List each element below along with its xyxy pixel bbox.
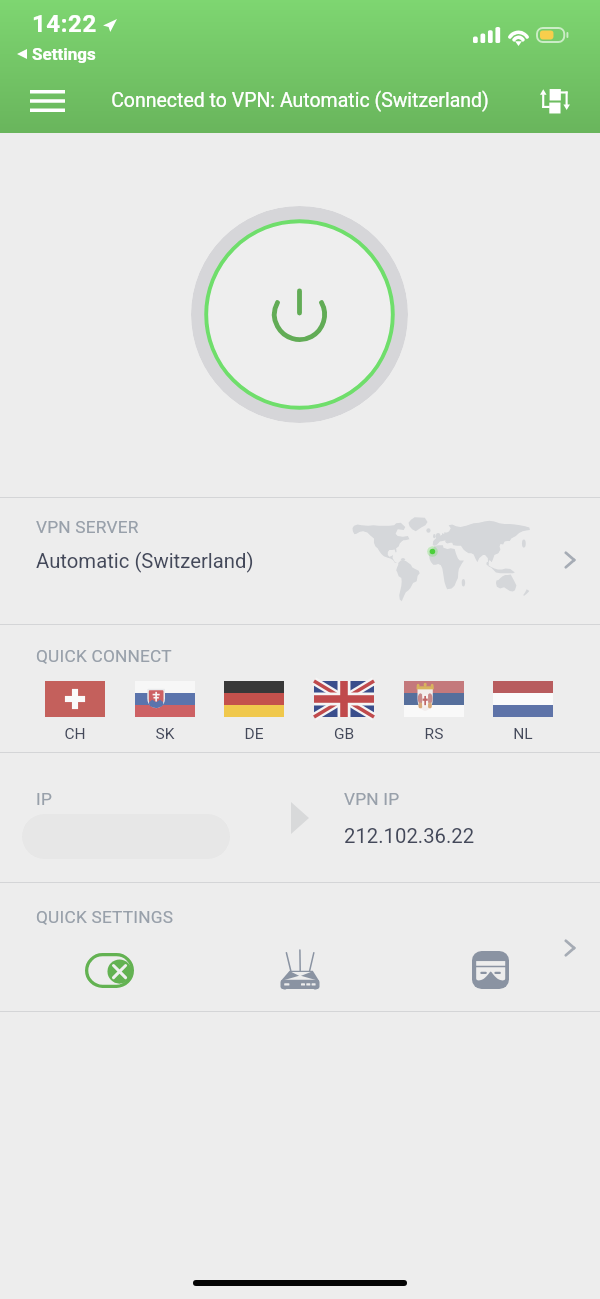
button[interactable]: Kill switch xyxy=(70,942,148,998)
staticText: QUICK CONNECT xyxy=(36,646,172,666)
staticText: VPN SERVER xyxy=(36,517,139,537)
button[interactable]: Power, connected xyxy=(191,206,408,423)
button[interactable]: Switch server xyxy=(527,73,583,129)
staticText: NL xyxy=(485,725,561,743)
button[interactable]: RS xyxy=(396,673,472,745)
staticText: VPN IP xyxy=(344,789,400,809)
staticText: Settings xyxy=(32,44,96,64)
button[interactable]: SK xyxy=(127,673,203,745)
staticText: 14:22 xyxy=(32,10,97,38)
staticText: DE xyxy=(216,725,292,743)
button[interactable]: GB xyxy=(306,673,382,745)
staticText: RS xyxy=(396,725,472,743)
button[interactable]: VPN SERVER xyxy=(0,498,600,624)
staticText: SK xyxy=(127,725,203,743)
staticText: Connected to VPN: Automatic (Switzerland… xyxy=(0,89,600,112)
button[interactable]: DE xyxy=(216,673,292,745)
button[interactable]: More settings xyxy=(550,928,590,968)
button[interactable]: NoSpy servers xyxy=(451,942,529,998)
staticText: GB xyxy=(306,725,382,743)
staticText: QUICK SETTINGS xyxy=(36,907,174,927)
staticText: Automatic (Switzerland) xyxy=(36,549,254,573)
staticText: CH xyxy=(37,725,113,743)
staticText: 212.102.36.22 xyxy=(344,824,475,848)
button[interactable]: CH xyxy=(37,673,113,745)
button[interactable]: Menu xyxy=(12,73,83,129)
button[interactable]: NL xyxy=(485,673,561,745)
button[interactable]: Router settings xyxy=(261,942,339,998)
staticText: IP xyxy=(36,789,53,809)
